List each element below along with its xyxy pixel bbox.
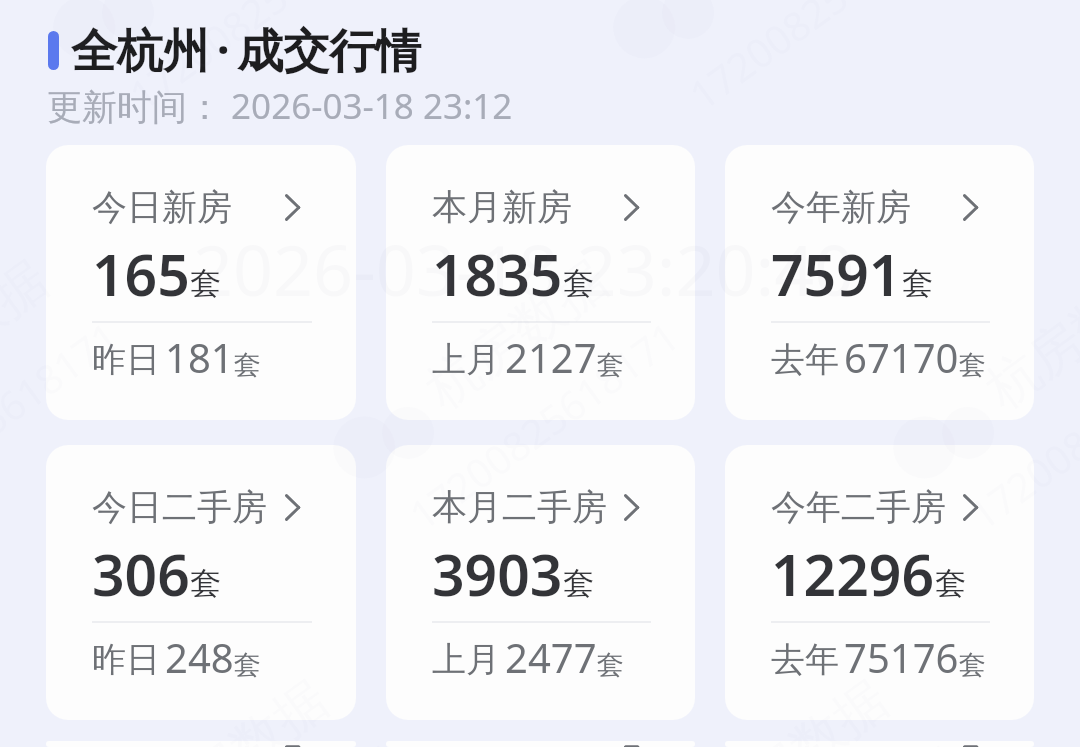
staticText: 2477: [505, 630, 597, 684]
other: 查看详情: [963, 194, 978, 221]
staticText: 今年新房: [771, 185, 911, 229]
staticText: 套: [935, 564, 966, 603]
staticText: 7591: [771, 235, 902, 313]
staticText: 本月二手房: [432, 485, 607, 529]
staticText: 本月新房: [432, 185, 572, 229]
other: 查看详情: [285, 194, 300, 221]
staticText: 今年二手房: [771, 485, 946, 529]
staticText: 181: [165, 330, 234, 384]
other: 查看详情: [624, 494, 639, 521]
button[interactable]: 今年二手房: [725, 445, 1034, 720]
button[interactable]: 今日新房: [46, 145, 356, 420]
staticText: 套: [563, 564, 594, 603]
staticText: 306: [92, 535, 190, 613]
staticText: 165: [92, 235, 190, 313]
button[interactable]: 今年新房: [725, 741, 1034, 747]
staticText: 套: [234, 648, 261, 682]
staticText: 昨日: [92, 338, 160, 381]
staticText: 2026-03-18 23:20:40: [193, 221, 855, 316]
staticText: 套: [597, 648, 624, 682]
staticText: 昨日: [92, 638, 160, 681]
staticText: 去年: [771, 638, 839, 681]
staticText: 12296: [771, 535, 935, 613]
staticText: 套: [902, 264, 933, 303]
staticText: 2127: [505, 330, 597, 384]
staticText: 更新时间： 2026-03-18 23:12: [47, 82, 513, 130]
other: 查看详情: [963, 494, 978, 521]
button[interactable]: 本月新房: [386, 741, 695, 747]
staticText: 3903: [432, 535, 563, 613]
staticText: 去年: [771, 338, 839, 381]
staticText: 1835: [432, 235, 563, 313]
staticText: 75176: [844, 630, 959, 684]
button[interactable]: 本月新房: [386, 145, 695, 420]
staticText: 套: [190, 264, 221, 303]
staticText: 套: [597, 348, 624, 382]
staticText: 全杭州 · 成交行情: [71, 18, 422, 81]
staticText: 今日二手房: [92, 485, 267, 529]
staticText: 上月: [432, 638, 500, 681]
button[interactable]: 今年新房: [725, 145, 1034, 420]
other: 查看详情: [285, 494, 300, 521]
staticText: 套: [959, 348, 986, 382]
button[interactable]: 本月二手房: [386, 445, 695, 720]
button[interactable]: 今日新房: [46, 741, 356, 747]
staticText: 上月: [432, 338, 500, 381]
staticText: 248: [165, 630, 234, 684]
staticText: 套: [190, 564, 221, 603]
staticText: 今日新房: [92, 185, 232, 229]
button[interactable]: 今日二手房: [46, 445, 356, 720]
staticText: 套: [563, 264, 594, 303]
staticText: 67170: [844, 330, 959, 384]
staticText: 套: [234, 348, 261, 382]
staticText: 套: [959, 648, 986, 682]
other: 查看详情: [624, 194, 639, 221]
